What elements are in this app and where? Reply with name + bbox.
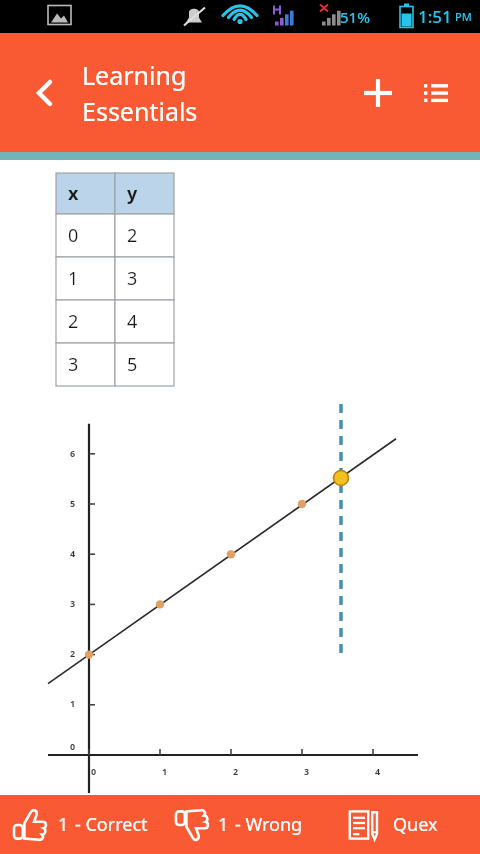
staticText: 1: [70, 697, 84, 709]
staticText: 5: [127, 352, 138, 377]
staticText: Essentials: [82, 94, 198, 128]
button[interactable]: 1: [172, 795, 345, 854]
staticText: 4: [127, 309, 138, 334]
staticText: PM: [455, 9, 472, 24]
staticText: Quex: [393, 812, 438, 837]
staticText: 2: [70, 647, 84, 659]
staticText: x: [68, 181, 79, 206]
staticText: 1: [218, 812, 229, 837]
staticText: 51%: [340, 7, 370, 27]
staticText: 3: [70, 597, 84, 609]
staticText: 3: [127, 266, 138, 291]
staticText: 6: [70, 447, 84, 459]
staticText: - Wrong: [235, 812, 303, 837]
button[interactable]: Quex: [345, 795, 480, 854]
staticText: 2: [68, 309, 79, 334]
staticText: 4: [70, 547, 84, 559]
staticText: 1: [68, 266, 79, 291]
staticText: 5: [70, 497, 84, 509]
staticText: 0: [70, 740, 84, 752]
staticText: 2: [127, 223, 138, 248]
staticText: 3: [304, 765, 318, 777]
button[interactable]: Add: [354, 69, 402, 117]
staticText: 1:51: [418, 5, 452, 28]
staticText: 4: [375, 765, 389, 777]
button[interactable]: Back: [18, 69, 66, 117]
staticText: 0: [91, 765, 105, 777]
staticText: 3: [68, 352, 79, 377]
button[interactable]: 1: [0, 795, 172, 854]
staticText: 2: [233, 765, 247, 777]
staticText: 1: [162, 765, 176, 777]
staticText: 1: [58, 812, 69, 837]
staticText: Learning: [82, 58, 187, 92]
staticText: - Correct: [75, 812, 148, 837]
staticText: 0: [68, 223, 79, 248]
button[interactable]: List: [412, 69, 460, 117]
staticText: y: [127, 181, 138, 206]
